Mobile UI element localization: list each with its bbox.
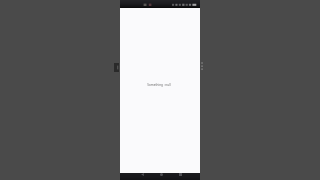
button[interactable]: More options xyxy=(201,62,204,70)
button[interactable]: Home xyxy=(159,172,164,177)
button[interactable]: Recent apps xyxy=(178,172,183,177)
button[interactable]: Back xyxy=(140,172,145,177)
staticText: Something : null xyxy=(147,83,171,87)
button[interactable]: Fold device xyxy=(114,63,119,72)
